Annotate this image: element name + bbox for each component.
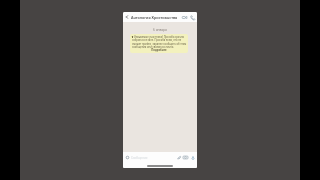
button[interactable]: Attach: [175, 152, 182, 163]
staticText: Антология Христианства: [131, 15, 178, 20]
staticText: собраться в зале. Просьба всем, кто не: [132, 38, 182, 42]
button[interactable]: Back: [123, 12, 131, 22]
button[interactable]: Call: [188, 12, 196, 22]
staticText: сообщения или связаться лично.: [132, 45, 174, 49]
button[interactable]: Video chat: [180, 12, 188, 22]
staticText: сможет прийти, заранее сообщить об этом: [132, 42, 187, 46]
button[interactable]: Уважаемые участники! Просьба срочно: [130, 34, 188, 53]
button[interactable]: Camera: [182, 152, 189, 163]
staticText: Сообщение: [131, 156, 148, 160]
staticText: Подробнее: [130, 48, 188, 52]
button[interactable]: Emoji: [123, 152, 131, 163]
staticText: Уважаемые участники! Просьба срочно: [132, 35, 185, 39]
button[interactable]: Voice message: [189, 152, 196, 163]
staticText: 6 января: [153, 28, 167, 32]
